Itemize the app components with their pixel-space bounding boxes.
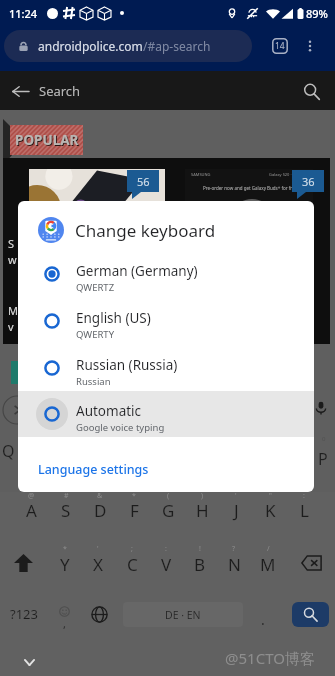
button[interactable]: More options (300, 36, 320, 56)
staticText: ; (131, 544, 133, 554)
staticText: Y (60, 553, 70, 576)
staticText: C (127, 553, 138, 576)
staticText: M (8, 303, 18, 318)
staticText: @ (28, 491, 35, 501)
button[interactable]: DE · EN (123, 602, 243, 627)
staticText: F (130, 499, 139, 522)
button[interactable]: @ (14, 495, 49, 523)
button[interactable]: ! (183, 548, 217, 578)
staticText: L (300, 499, 309, 522)
staticText: Change keyboard (75, 219, 216, 242)
staticText: . (261, 610, 265, 629)
staticText: ' (235, 491, 237, 501)
staticText: S (61, 499, 71, 522)
button[interactable]: Back (5, 76, 35, 106)
staticText: ) (201, 491, 204, 501)
staticText: 36 (302, 174, 315, 189)
staticText: Q (2, 440, 15, 462)
button[interactable]: English (US) (18, 298, 314, 344)
staticText: N (228, 553, 241, 576)
button[interactable]: * (48, 548, 81, 578)
staticText: German (Germany) (76, 262, 198, 280)
button[interactable]: androidpolice.com (4, 30, 252, 62)
staticText: Russian (76, 375, 111, 388)
button[interactable]: ) (185, 495, 219, 523)
staticText: # (64, 491, 69, 501)
button[interactable]: Backspace (296, 548, 326, 578)
staticText: w (8, 252, 17, 267)
button[interactable]: Switch language (84, 599, 114, 629)
staticText: Language settings (38, 461, 149, 478)
staticText: @51CTO博客 (225, 648, 315, 668)
button[interactable]: Emoji (50, 599, 78, 629)
staticText: , (63, 616, 66, 631)
button[interactable]: ? (217, 548, 251, 578)
staticText: SAMSUNG (191, 172, 211, 177)
button[interactable]: ( (151, 495, 185, 523)
staticText: DE · EN (165, 608, 201, 622)
staticText: Pre-order now and get Galaxy Buds+ for f… (203, 185, 298, 191)
staticText: : (303, 491, 305, 501)
staticText: 0 (322, 435, 326, 443)
staticText: POPULAR (16, 132, 80, 150)
button[interactable]: Voice search (312, 399, 330, 417)
staticText: Russian (Russia) (76, 356, 178, 374)
staticText: /#ap-search (143, 38, 211, 54)
staticText: Automatic (76, 402, 142, 420)
staticText: 11:24 (9, 6, 38, 21)
staticText: POPULAR (15, 131, 79, 149)
button[interactable]: Language settings (18, 448, 314, 490)
staticText: QWERTZ (76, 281, 115, 294)
button[interactable]: Russian (Russia) (18, 345, 314, 391)
button[interactable]: Search (292, 602, 329, 627)
button[interactable]: # (49, 495, 83, 523)
staticText: * (63, 544, 67, 554)
button[interactable]: Automatic (18, 391, 314, 437)
staticText: J (234, 499, 239, 522)
staticText: G (162, 499, 175, 522)
staticText: ( (167, 491, 170, 501)
button[interactable]: Hide keyboard (18, 651, 40, 673)
staticText: X (93, 553, 103, 576)
staticText: H (196, 499, 209, 522)
staticText: / (267, 544, 270, 554)
staticText: androidpolice.com (38, 38, 143, 54)
staticText: 14 (275, 40, 285, 52)
button[interactable]: " (253, 495, 287, 523)
staticText: D (94, 499, 107, 522)
staticText: Galaxy S20 · S20+ (269, 172, 302, 177)
staticText: ? (232, 544, 236, 554)
button[interactable]: ' (81, 548, 115, 578)
staticText: ?123 (10, 605, 38, 623)
staticText: : (165, 544, 167, 554)
staticText: Search (39, 82, 81, 100)
staticText: M (260, 553, 276, 576)
staticText: 89% (306, 6, 328, 21)
staticText: QWERTY (76, 328, 115, 341)
staticText: A (26, 499, 37, 522)
staticText: * (132, 491, 136, 501)
button[interactable]: : (149, 548, 183, 578)
button[interactable]: ; (115, 548, 149, 578)
button[interactable]: German (Germany) (18, 251, 314, 297)
staticText: ' (97, 544, 99, 554)
staticText: English (US) (76, 309, 151, 327)
staticText: V (161, 553, 172, 576)
button[interactable]: * (117, 495, 151, 523)
staticText: 56 (137, 174, 150, 189)
staticText: K (265, 499, 276, 522)
button[interactable]: Shift (8, 548, 38, 578)
button[interactable]: : (287, 495, 321, 523)
button[interactable]: ?123 (2, 599, 46, 629)
staticText: & (97, 491, 103, 501)
staticText: S (8, 236, 15, 251)
button[interactable]: & (83, 495, 117, 523)
staticText: Google voice typing (76, 421, 165, 434)
button[interactable]: / (251, 548, 285, 578)
staticText: v (8, 319, 14, 334)
button[interactable]: Search (296, 76, 326, 106)
button[interactable]: Tabs (272, 38, 288, 54)
button[interactable]: ' (219, 495, 253, 523)
staticText: " (269, 491, 272, 501)
